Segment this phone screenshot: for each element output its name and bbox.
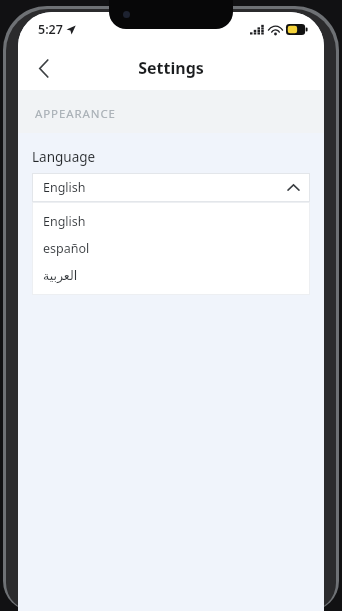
staticText: APPEARANCE <box>35 106 116 122</box>
button[interactable]: English <box>32 173 310 202</box>
button[interactable]: English <box>32 208 310 235</box>
staticText: español <box>43 240 90 257</box>
staticText: العربية <box>43 268 78 283</box>
button[interactable]: español <box>32 235 310 262</box>
staticText: Language <box>32 148 96 166</box>
staticText: English <box>43 179 288 196</box>
button[interactable]: العربية <box>32 262 310 289</box>
staticText: Settings <box>138 57 204 79</box>
staticText: 5:27 <box>38 21 63 38</box>
staticText: English <box>43 213 86 230</box>
button[interactable]: Back <box>24 48 64 88</box>
